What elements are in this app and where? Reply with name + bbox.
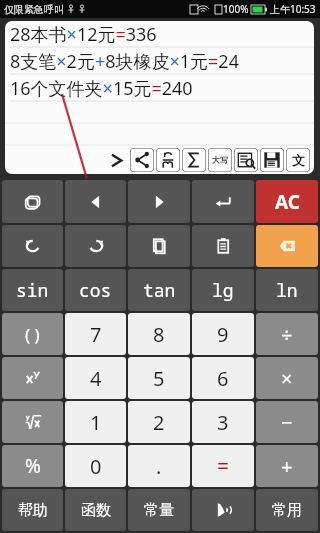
staticText: 大写 bbox=[212, 155, 228, 165]
button[interactable]: % bbox=[2, 445, 63, 487]
staticText: 0 bbox=[90, 453, 102, 480]
button[interactable]: Enter bbox=[192, 180, 254, 223]
button[interactable]: Right bbox=[128, 180, 190, 223]
button[interactable]: x to the power y bbox=[2, 357, 63, 399]
staticText: × bbox=[281, 365, 293, 392]
staticText: 16个文件夹×15元=240 bbox=[10, 76, 193, 101]
button[interactable]: × bbox=[256, 357, 318, 399]
staticText: 7 bbox=[90, 321, 102, 348]
button[interactable]: Share bbox=[130, 148, 154, 172]
button[interactable]: 1 bbox=[65, 401, 126, 443]
button[interactable]: 7 bbox=[65, 313, 126, 355]
staticText: 帮助 bbox=[18, 501, 48, 520]
button[interactable]: Next bbox=[103, 147, 129, 173]
staticText: 9 bbox=[217, 321, 229, 348]
staticText: sin bbox=[16, 278, 49, 303]
button[interactable]: 9 bbox=[192, 313, 254, 355]
button[interactable]: + bbox=[256, 445, 318, 487]
staticText: ( ) bbox=[25, 323, 40, 346]
staticText: ÷ bbox=[281, 321, 293, 348]
staticText: 28本书×12元=336 bbox=[10, 22, 157, 47]
button[interactable]: ln bbox=[256, 269, 318, 311]
button[interactable]: Copy bbox=[128, 225, 190, 267]
button[interactable]: Text bbox=[286, 148, 310, 172]
button[interactable]: = bbox=[192, 445, 254, 487]
button[interactable]: y-th root of x bbox=[2, 401, 63, 443]
button[interactable]: Search bbox=[234, 148, 258, 172]
button[interactable]: − bbox=[256, 401, 318, 443]
button[interactable]: Undo bbox=[2, 225, 63, 267]
staticText: 100% bbox=[223, 2, 249, 16]
button[interactable]: 常量 bbox=[128, 489, 190, 531]
button[interactable]: Windows bbox=[2, 180, 63, 223]
button[interactable]: Backspace bbox=[256, 225, 318, 267]
button[interactable]: tan bbox=[128, 269, 190, 311]
button[interactable]: Left bbox=[65, 180, 126, 223]
button[interactable]: 常用 bbox=[256, 489, 318, 531]
button[interactable]: 3 bbox=[192, 401, 254, 443]
button[interactable]: Sum bbox=[182, 148, 206, 172]
button[interactable]: 2 bbox=[128, 401, 190, 443]
staticText: 函数 bbox=[81, 501, 111, 520]
staticText: = bbox=[217, 452, 230, 481]
staticText: 仅限紧急呼叫 bbox=[4, 3, 64, 16]
staticText: 上午10:53 bbox=[270, 2, 316, 16]
button[interactable]: 8 bbox=[128, 313, 190, 355]
staticText: 5 bbox=[153, 365, 165, 392]
button[interactable]: 函数 bbox=[65, 489, 126, 531]
button[interactable]: Redo bbox=[65, 225, 126, 267]
staticText: 3 bbox=[217, 409, 229, 436]
button[interactable]: 帮助 bbox=[2, 489, 63, 531]
staticText: % bbox=[25, 453, 41, 479]
button[interactable]: 0 bbox=[65, 445, 126, 487]
staticText: 6 bbox=[217, 365, 229, 392]
staticText: 8 bbox=[153, 321, 165, 348]
staticText: tan bbox=[143, 278, 176, 303]
staticText: 常量 bbox=[144, 501, 174, 520]
staticText: − bbox=[281, 409, 293, 436]
staticText: 8支笔×2元+8块橡皮×1元=24 bbox=[10, 49, 239, 74]
button[interactable]: . bbox=[128, 445, 190, 487]
button[interactable]: Voice bbox=[192, 489, 254, 531]
button[interactable]: cos bbox=[65, 269, 126, 311]
button[interactable]: Fraction bbox=[156, 148, 180, 172]
staticText: 文 bbox=[292, 152, 305, 168]
staticText: 1 bbox=[90, 409, 102, 436]
button[interactable]: 6 bbox=[192, 357, 254, 399]
button[interactable]: lg bbox=[192, 269, 254, 311]
button[interactable]: ( ) bbox=[2, 313, 63, 355]
button[interactable]: Paste bbox=[192, 225, 254, 267]
button[interactable]: ÷ bbox=[256, 313, 318, 355]
staticText: . bbox=[156, 453, 162, 480]
button[interactable]: 4 bbox=[65, 357, 126, 399]
button[interactable]: Save bbox=[260, 148, 284, 172]
button[interactable]: AC bbox=[256, 180, 318, 223]
staticText: AC bbox=[275, 189, 300, 215]
staticText: + bbox=[281, 453, 293, 480]
staticText: 4 bbox=[90, 365, 102, 392]
button[interactable]: sin bbox=[2, 269, 63, 311]
staticText: ln bbox=[276, 278, 298, 303]
staticText: lg bbox=[212, 278, 234, 303]
staticText: 2 bbox=[153, 409, 165, 436]
button[interactable]: 5 bbox=[128, 357, 190, 399]
staticText: 常用 bbox=[272, 501, 302, 520]
button[interactable]: Uppercase bbox=[208, 148, 232, 172]
staticText: cos bbox=[79, 278, 112, 303]
